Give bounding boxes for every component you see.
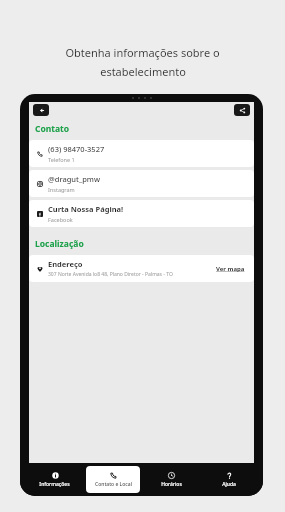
button[interactable]: Contato e Local (86, 466, 140, 493)
button[interactable]: Ajuda (202, 466, 256, 493)
staticText: Obtenha informações sobre o (65, 45, 220, 60)
staticText: estabelecimento (100, 64, 186, 79)
staticText: Telefone 1 (48, 156, 75, 163)
button[interactable]: Informações (27, 466, 82, 493)
button[interactable]: Ver mapa (214, 263, 247, 275)
button[interactable]: Horários (144, 466, 198, 493)
button[interactable]: @dragut_pmw (29, 170, 254, 197)
button[interactable]: Endereço (29, 255, 254, 282)
staticText: Localização (35, 238, 84, 250)
staticText: 307 Norte Avenida lo8 48, Plano Diretor … (48, 271, 173, 278)
staticText: Instagram (48, 186, 75, 193)
button[interactable]: Back (33, 104, 49, 116)
staticText: Informações (39, 481, 70, 488)
staticText: Endereço (48, 259, 83, 269)
staticText: Curta Nossa Página! (48, 204, 124, 214)
staticText: Ajuda (222, 481, 236, 488)
staticText: Contato e Local (95, 481, 132, 488)
button[interactable]: Curta Nossa Página! (29, 200, 254, 227)
staticText: Contato (35, 123, 70, 135)
staticText: @dragut_pmw (48, 174, 100, 184)
staticText: Horários (161, 481, 182, 488)
staticText: (63) 98470-3527 (48, 144, 105, 154)
button[interactable]: (63) 98470-3527 (29, 140, 254, 167)
staticText: Ver mapa (216, 265, 245, 273)
button[interactable]: Share (234, 104, 250, 116)
staticText: Facebook (48, 216, 73, 223)
